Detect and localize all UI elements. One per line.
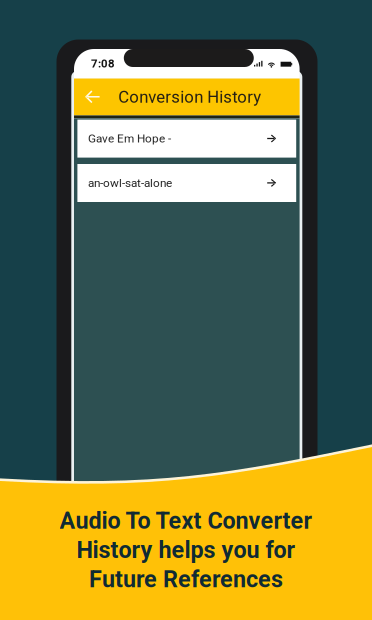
staticText: an-owl-sat-alone (88, 176, 172, 190)
staticText: Future References (89, 566, 283, 593)
button[interactable]: Gave Em Hope - (77, 120, 296, 158)
staticText: 7:08 (91, 57, 115, 70)
button[interactable]: Back (77, 78, 107, 115)
staticText: Gave Em Hope - (88, 132, 171, 145)
staticText: History helps you for (76, 536, 295, 564)
staticText: Conversion History (118, 87, 261, 107)
button[interactable]: an-owl-sat-alone (77, 164, 296, 202)
staticText: Audio To Text Converter (59, 507, 312, 534)
